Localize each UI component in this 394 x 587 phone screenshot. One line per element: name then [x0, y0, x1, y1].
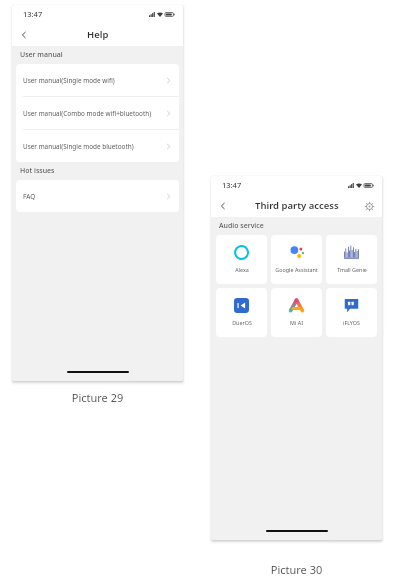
- button[interactable]: Back: [14, 25, 34, 45]
- staticText: Third party access: [255, 199, 339, 212]
- staticText: Help: [87, 28, 109, 41]
- button[interactable]: DuerOS: [216, 288, 267, 337]
- button[interactable]: Alexa: [216, 235, 267, 284]
- button[interactable]: Mi AI: [271, 288, 322, 337]
- staticText: User manual(Single mode bluetooth): [23, 142, 165, 151]
- staticText: Audio service: [219, 221, 264, 231]
- staticText: Alexa: [235, 266, 249, 273]
- button[interactable]: User manual(Single mode wifi): [16, 64, 179, 96]
- staticText: Tmall Genie: [337, 266, 367, 273]
- staticText: Picture 30: [211, 562, 382, 577]
- button[interactable]: Google Assistant: [271, 235, 322, 284]
- button[interactable]: Back: [213, 196, 233, 216]
- staticText: Hot issues: [20, 166, 55, 176]
- button[interactable]: iFLYOS: [326, 288, 377, 337]
- staticText: User manual: [20, 50, 63, 60]
- staticText: 13:47: [222, 180, 242, 190]
- staticText: iFLYOS: [343, 319, 360, 326]
- button[interactable]: User manual(Single mode bluetooth): [16, 129, 179, 162]
- staticText: Picture 29: [12, 390, 183, 405]
- button[interactable]: User manual(Combo mode wifi+bluetooth): [16, 96, 179, 129]
- button[interactable]: Tmall Genie: [326, 235, 377, 284]
- staticText: User manual(Combo mode wifi+bluetooth): [23, 109, 165, 118]
- button[interactable]: FAQ: [16, 180, 179, 212]
- staticText: User manual(Single mode wifi): [23, 76, 165, 85]
- staticText: FAQ: [23, 192, 165, 201]
- staticText: DuerOS: [232, 319, 252, 326]
- button[interactable]: Settings: [362, 199, 376, 213]
- staticText: Mi AI: [290, 319, 303, 326]
- staticText: 13:47: [23, 9, 43, 19]
- staticText: Google Assistant: [275, 266, 318, 273]
